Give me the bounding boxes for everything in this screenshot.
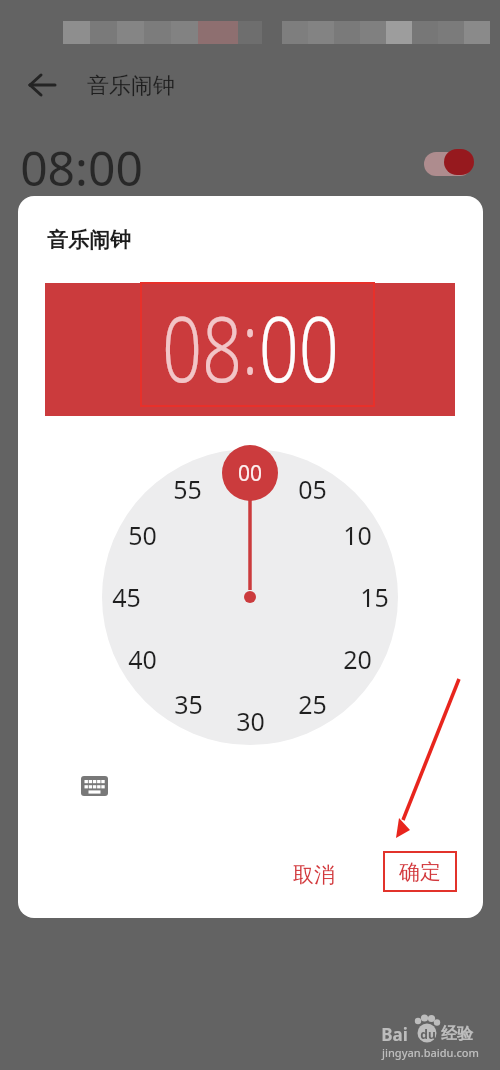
staticText: 25 bbox=[298, 687, 327, 721]
button[interactable] bbox=[80, 774, 110, 798]
staticText: 30 bbox=[236, 704, 265, 738]
staticText: : bbox=[242, 286, 259, 398]
staticText: 40 bbox=[128, 642, 157, 676]
staticText: 55 bbox=[173, 472, 202, 506]
staticText: 20 bbox=[343, 642, 372, 676]
staticText: 音乐闹钟 bbox=[87, 72, 175, 100]
button[interactable] bbox=[424, 151, 474, 177]
staticText: 50 bbox=[128, 518, 157, 552]
staticText: 35 bbox=[174, 687, 203, 721]
staticText: 08 bbox=[162, 286, 242, 409]
staticText: 取消 bbox=[293, 862, 335, 888]
staticText: 05 bbox=[298, 472, 327, 506]
staticText: 10 bbox=[343, 518, 372, 552]
button[interactable]: 00 bbox=[222, 445, 278, 501]
button[interactable]: 确定 bbox=[383, 851, 457, 892]
staticText: 音乐闹钟 bbox=[47, 227, 131, 253]
staticText: Bai bbox=[381, 1023, 408, 1045]
staticText: 确定 bbox=[399, 859, 441, 885]
staticText: 45 bbox=[112, 580, 141, 614]
staticText: du bbox=[420, 1026, 436, 1042]
staticText: jingyan.baidu.com bbox=[382, 1045, 479, 1060]
staticText: 15 bbox=[360, 580, 389, 614]
button[interactable] bbox=[28, 72, 58, 98]
staticText: 00 bbox=[238, 459, 263, 488]
button[interactable]: 取消 bbox=[278, 855, 350, 895]
staticText: 08:00 bbox=[20, 135, 143, 197]
staticText: 经验 bbox=[441, 1024, 473, 1044]
staticText: 00 bbox=[259, 286, 339, 409]
